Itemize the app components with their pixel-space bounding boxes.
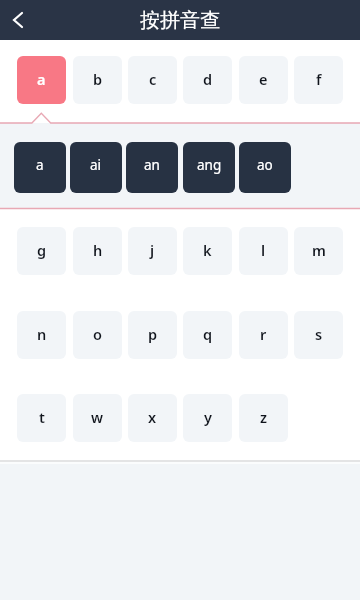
button[interactable]: z — [239, 394, 288, 442]
button[interactable]: t — [17, 394, 66, 442]
button[interactable]: f — [294, 56, 343, 104]
staticText: a — [37, 69, 46, 89]
staticText: h — [93, 240, 103, 260]
staticText: n — [37, 324, 47, 344]
staticText: ao — [257, 156, 273, 174]
staticText: l — [261, 240, 266, 260]
staticText: ai — [90, 156, 102, 174]
staticText: r — [260, 324, 267, 344]
staticText: b — [93, 69, 103, 89]
button[interactable]: l — [239, 227, 288, 275]
button[interactable]: k — [183, 227, 232, 275]
button[interactable]: b — [73, 56, 122, 104]
staticText: ang — [197, 156, 222, 174]
button[interactable]: a — [14, 142, 66, 193]
button[interactable]: n — [17, 311, 66, 359]
button[interactable]: c — [128, 56, 177, 104]
button[interactable]: ai — [70, 142, 122, 193]
staticText: k — [203, 240, 212, 260]
staticText: m — [312, 240, 326, 260]
staticText: o — [93, 324, 102, 344]
button[interactable]: ang — [183, 142, 235, 193]
staticText: f — [316, 69, 322, 89]
staticText: an — [144, 156, 160, 174]
button[interactable]: Back — [0, 0, 36, 40]
staticText: c — [149, 69, 157, 89]
staticText: d — [203, 69, 213, 89]
button[interactable]: y — [183, 394, 232, 442]
staticText: e — [259, 69, 268, 89]
button[interactable]: p — [128, 311, 177, 359]
staticText: z — [260, 407, 268, 427]
staticText: p — [148, 324, 158, 344]
button[interactable]: s — [294, 311, 343, 359]
button[interactable]: a — [17, 56, 66, 104]
staticText: g — [37, 240, 47, 260]
staticText: t — [39, 407, 45, 427]
button[interactable]: q — [183, 311, 232, 359]
staticText: j — [150, 240, 155, 260]
button[interactable]: d — [183, 56, 232, 104]
button[interactable]: o — [73, 311, 122, 359]
button[interactable]: an — [126, 142, 178, 193]
button[interactable]: ao — [239, 142, 291, 193]
staticText: q — [203, 324, 213, 344]
button[interactable]: j — [128, 227, 177, 275]
button[interactable]: h — [73, 227, 122, 275]
button[interactable]: e — [239, 56, 288, 104]
staticText: y — [204, 407, 212, 427]
staticText: s — [315, 324, 323, 344]
button[interactable]: r — [239, 311, 288, 359]
button[interactable]: w — [73, 394, 122, 442]
staticText: a — [36, 156, 44, 174]
staticText: x — [148, 407, 157, 427]
staticText: 按拼音查 — [140, 8, 220, 33]
button[interactable]: x — [128, 394, 177, 442]
button[interactable]: m — [294, 227, 343, 275]
button[interactable]: g — [17, 227, 66, 275]
staticText: w — [91, 407, 104, 427]
